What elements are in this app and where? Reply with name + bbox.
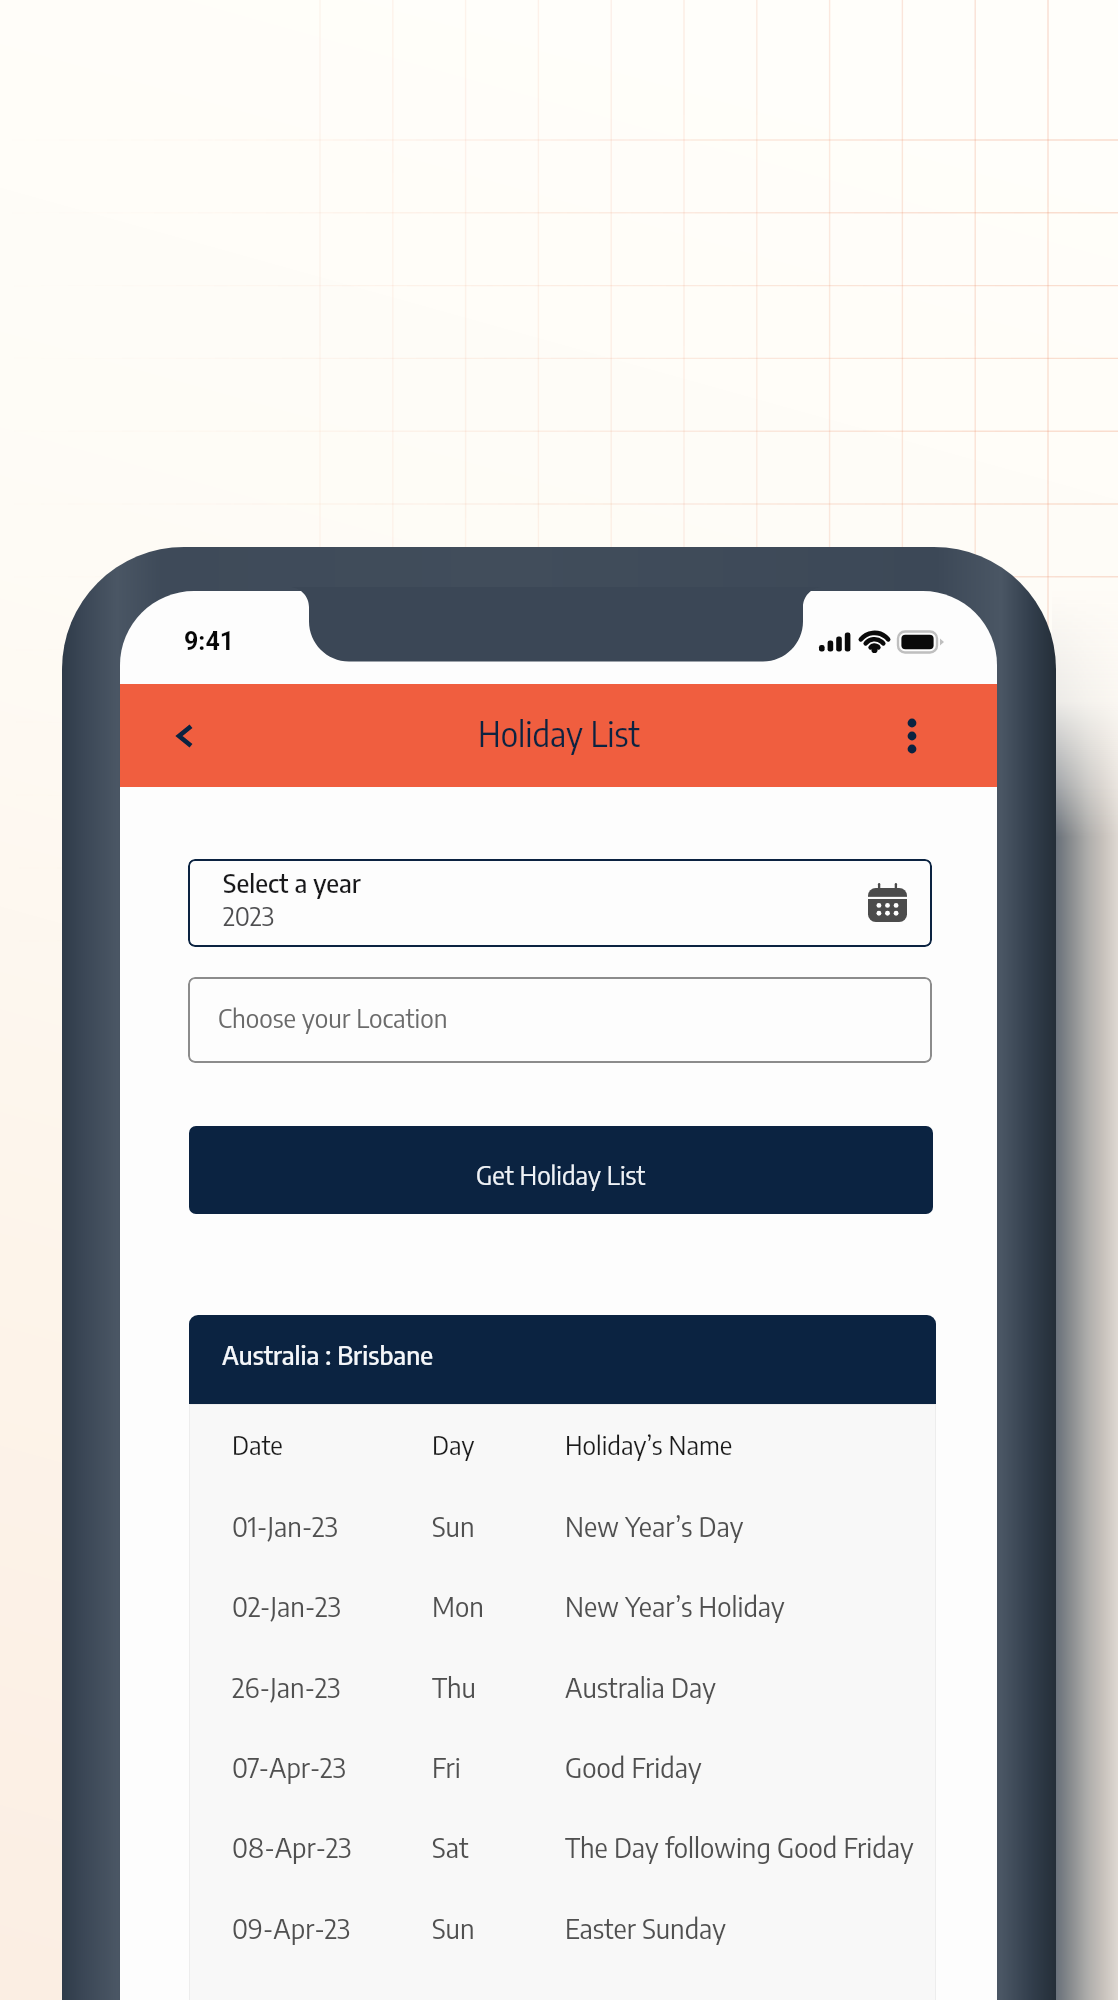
other: Pick a year (868, 883, 907, 922)
staticText: 02-Jan-23 (232, 1589, 341, 1623)
staticText: Fri (432, 1750, 461, 1784)
staticText: Holiday List (478, 712, 640, 754)
staticText: 26-Jan-23 (232, 1670, 341, 1704)
staticText: Sun (432, 1911, 475, 1945)
staticText: Thu (432, 1670, 476, 1704)
button[interactable]: More options (868, 684, 956, 787)
staticText: 07-Apr-23 (232, 1750, 346, 1784)
staticText: New Year’s Day (565, 1509, 744, 1543)
staticText: 2023 (223, 899, 275, 931)
staticText: Australia : Brisbane (222, 1338, 434, 1370)
button[interactable]: Back (141, 684, 229, 787)
staticText: 09-Apr-23 (232, 1911, 351, 1945)
staticText: 08-Apr-23 (232, 1830, 352, 1864)
staticText: Sun (432, 1509, 475, 1543)
staticText: 01-Jan-23 (232, 1509, 338, 1543)
staticText: The Day following Good Friday (565, 1830, 914, 1864)
staticText: Good Friday (565, 1750, 702, 1784)
button[interactable]: Select a year (188, 859, 932, 947)
staticText: Choose your Location (218, 1001, 448, 1033)
staticText: Mon (432, 1589, 484, 1623)
button[interactable]: Choose your Location (188, 977, 932, 1063)
staticText: Day (432, 1428, 475, 1460)
staticText: Holiday’s Name (565, 1428, 733, 1460)
staticText: New Year’s Holiday (565, 1589, 785, 1623)
staticText: Select a year (223, 866, 361, 898)
staticText: Easter Sunday (565, 1911, 726, 1945)
staticText: Sat (432, 1830, 469, 1864)
staticText: Date (232, 1428, 283, 1460)
button[interactable]: Get Holiday List (189, 1126, 933, 1214)
staticText: Get Holiday List (476, 1158, 646, 1190)
staticText: Australia Day (565, 1670, 716, 1704)
staticText: 9:41 (184, 627, 235, 656)
